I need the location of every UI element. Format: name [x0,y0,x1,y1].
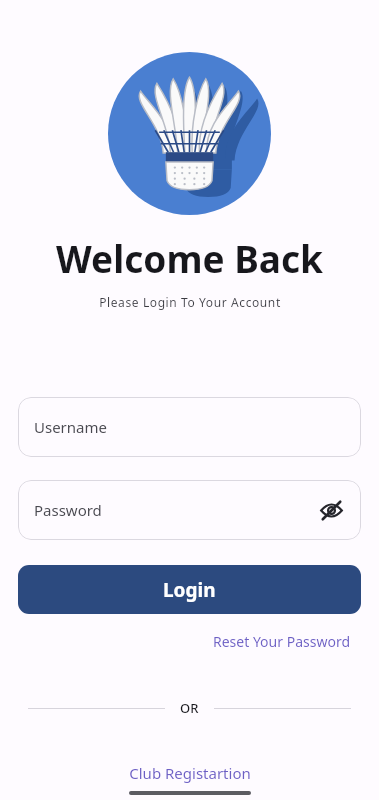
staticText: Username [34,417,107,437]
staticText: Please Login To Your Account [99,294,281,310]
button[interactable]: Password [18,480,361,540]
staticText: Login [163,577,216,603]
button[interactable]: Club Registartion [129,763,251,783]
button[interactable]: Show password [314,493,348,527]
staticText: Welcome Back [56,233,323,283]
staticText: Club Registartion [129,763,251,783]
button[interactable]: Reset Your Password [213,632,350,651]
staticText: Reset Your Password [213,632,350,651]
staticText: Password [34,500,102,520]
staticText: OR [180,699,199,717]
button[interactable]: Login [18,565,361,614]
button[interactable]: Username [18,397,361,457]
